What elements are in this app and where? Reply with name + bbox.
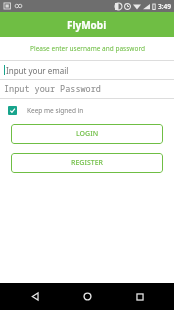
staticText: Input your Password [4,83,101,95]
button[interactable]: Back [17,283,53,310]
staticText: LOGIN [76,129,99,139]
staticText: 3:49 [158,2,171,11]
staticText: REGISTER [71,158,103,168]
button[interactable]: Home [69,283,105,310]
button[interactable]: Keep me signed in [0,104,174,117]
button[interactable]: LOGIN [11,124,163,144]
staticText: Input your email [6,65,69,76]
staticText: Keep me signed in [27,106,84,115]
button[interactable]: REGISTER [11,153,163,173]
button[interactable]: Recent apps [122,283,158,310]
staticText: FlyMobi [67,18,107,32]
button[interactable]: Input your email [0,61,174,79]
staticText: Please enter username and password [30,44,145,53]
button[interactable]: Input your Password [0,80,174,98]
